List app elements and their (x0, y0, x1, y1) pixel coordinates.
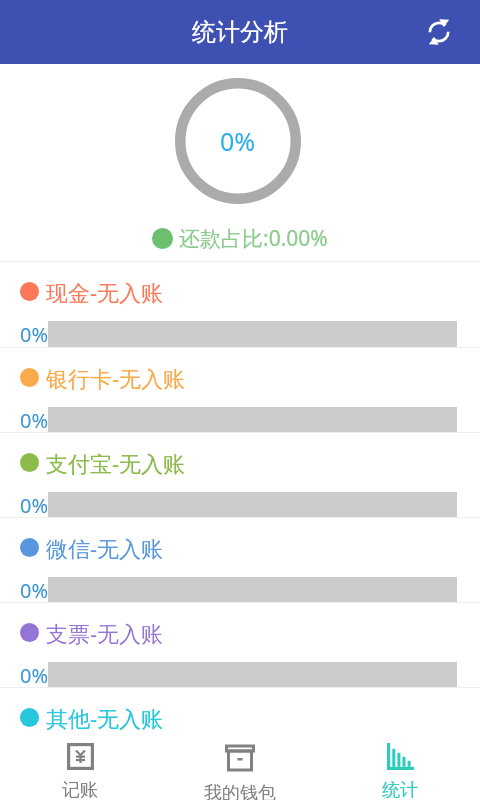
button[interactable]: 我的钱包 (160, 730, 320, 800)
staticText: 0% (20, 321, 49, 347)
staticText: 统计分析 (192, 17, 288, 47)
staticText: 银行卡-无入账 (46, 363, 186, 393)
button[interactable]: 其他-无入账 (0, 688, 480, 773)
staticText: 微信-无入账 (46, 533, 164, 563)
staticText: 还款占比:0.00% (179, 224, 328, 253)
staticText: 记账 (62, 779, 98, 800)
staticText: 统计 (382, 779, 418, 800)
button[interactable]: 现金-无入账 (0, 262, 480, 347)
button[interactable]: 统计 (320, 730, 480, 800)
staticText: 0% (20, 662, 49, 687)
staticText: 0% (20, 492, 49, 517)
button[interactable]: 微信-无入账 (0, 518, 480, 602)
staticText: 0% (220, 124, 256, 158)
staticText: 现金-无入账 (46, 277, 164, 307)
staticText: 0% (20, 577, 49, 602)
button[interactable]: 支票-无入账 (0, 603, 480, 687)
staticText: 支票-无入账 (46, 618, 164, 648)
button[interactable]: 支付宝-无入账 (0, 433, 480, 517)
staticText: 0% (20, 407, 49, 432)
button[interactable]: Refresh (417, 10, 461, 54)
staticText: 其他-无入账 (46, 703, 164, 733)
button[interactable]: 记账 (0, 730, 160, 800)
button[interactable]: 银行卡-无入账 (0, 348, 480, 432)
staticText: 支付宝-无入账 (46, 448, 186, 478)
staticText: 我的钱包 (204, 782, 276, 800)
